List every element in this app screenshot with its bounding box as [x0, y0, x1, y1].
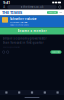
staticText: Become a member — [17, 29, 46, 33]
staticText: Subscribe — [48, 12, 56, 13]
button[interactable]: Text size — [2, 5, 6, 9]
staticText: Britain's economy grows faster — [2, 37, 46, 40]
staticText: THE TIMES — [2, 10, 22, 15]
button[interactable]: Become a member — [0, 27, 64, 34]
button[interactable]: Toolbar item — [51, 91, 64, 94]
button[interactable]: Subscribe — [47, 11, 58, 14]
button[interactable]: Save — [6, 51, 9, 53]
staticText: Subscriber exclusive — [10, 17, 37, 21]
staticText: Robert Lea, Industrial Editor — [2, 46, 20, 48]
staticText: than forecast in first quarter — [2, 41, 43, 44]
button[interactable]: Address — [7, 5, 57, 9]
button[interactable]: Reload — [58, 5, 61, 9]
staticText: Read the full story with unlimited — [10, 21, 28, 23]
staticText: digital access from £1 a week — [10, 24, 29, 26]
button[interactable]: Toolbar item — [26, 91, 38, 94]
staticText: 9:41 — [3, 0, 10, 5]
button[interactable]: Subscribe — [50, 50, 61, 54]
button[interactable]: Toolbar item — [0, 91, 13, 94]
button[interactable]: Toolbar item — [38, 91, 51, 94]
staticText: thetimes.co.uk — [23, 5, 43, 9]
button[interactable]: Toolbar item — [13, 91, 26, 94]
staticText: A — [3, 5, 5, 9]
button[interactable]: Share — [2, 51, 5, 53]
staticText: Subscribe — [52, 51, 60, 53]
